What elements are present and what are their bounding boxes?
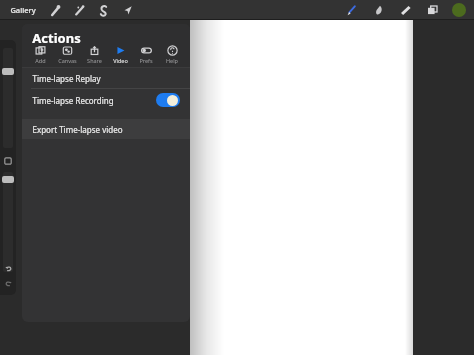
button[interactable]: Gallery xyxy=(8,3,38,17)
button[interactable]: Time-lapse Recording xyxy=(22,89,190,111)
staticText: Gallery xyxy=(10,5,36,15)
staticText: Canvas xyxy=(58,57,77,64)
button[interactable]: Opacity xyxy=(3,172,13,272)
button[interactable]: Adjustments xyxy=(72,3,87,18)
button[interactable]: Modify xyxy=(3,156,13,166)
button[interactable]: Color xyxy=(452,3,466,17)
staticText: Share xyxy=(87,57,102,64)
button[interactable]: Layers xyxy=(425,3,440,18)
button[interactable]: Redo xyxy=(3,278,14,289)
staticText: Prefs xyxy=(139,57,153,64)
staticText: Export Time-lapse video xyxy=(32,124,123,135)
button[interactable]: Paint xyxy=(344,3,359,18)
staticText: Help xyxy=(166,57,178,64)
staticText: Add xyxy=(35,57,46,64)
button[interactable]: Video xyxy=(107,45,133,64)
button[interactable]: Actions xyxy=(48,3,63,18)
button[interactable]: Prefs xyxy=(133,45,159,64)
staticText: Time-lapse Replay xyxy=(32,73,101,84)
button[interactable]: Share xyxy=(81,45,107,64)
staticText: Actions xyxy=(32,29,81,47)
button[interactable]: Add xyxy=(27,45,54,64)
button[interactable]: Erase xyxy=(398,3,413,18)
button[interactable]: Time-lapse Recording toggle xyxy=(156,93,180,107)
button[interactable]: Canvas xyxy=(54,45,81,64)
button[interactable]: Undo xyxy=(3,263,14,274)
staticText: Time-lapse Recording xyxy=(32,95,114,106)
button[interactable]: Transform xyxy=(120,3,135,18)
button[interactable]: Time-lapse Replay xyxy=(22,68,190,88)
button[interactable]: Selection xyxy=(96,3,111,18)
button[interactable]: Export Time-lapse video xyxy=(22,119,190,139)
staticText: Video xyxy=(113,57,128,64)
button[interactable]: Help xyxy=(159,45,185,64)
button[interactable]: Brush size xyxy=(3,48,13,148)
button[interactable]: Smudge xyxy=(371,3,386,18)
